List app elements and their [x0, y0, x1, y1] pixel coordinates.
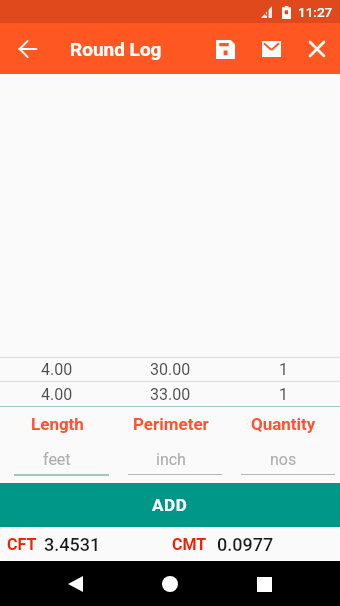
- button[interactable]: 4.00: [0, 358, 114, 381]
- staticText: 33.00: [150, 385, 191, 404]
- button[interactable]: 1: [227, 382, 340, 406]
- button[interactable]: Save: [202, 26, 248, 72]
- button[interactable]: CFT: [7, 527, 170, 561]
- staticText: 30.00: [150, 360, 191, 379]
- button[interactable]: 1: [227, 358, 340, 381]
- staticText: CFT: [7, 535, 37, 554]
- button[interactable]: Home: [150, 564, 190, 604]
- staticText: Round Log: [70, 38, 162, 60]
- button[interactable]: nos: [227, 450, 340, 475]
- staticText: 3.4531: [44, 534, 101, 555]
- button[interactable]: Back: [55, 564, 95, 604]
- staticText: feet: [43, 450, 71, 469]
- staticText: ADD: [152, 495, 188, 515]
- button[interactable]: CMT: [172, 527, 340, 561]
- staticText: nos: [270, 450, 297, 469]
- button[interactable]: 30.00: [114, 358, 227, 381]
- button[interactable]: 33.00: [114, 382, 227, 406]
- staticText: 1: [279, 385, 288, 404]
- staticText: 0.0977: [217, 534, 274, 555]
- button[interactable]: Email: [248, 26, 294, 72]
- staticText: 4.00: [41, 360, 73, 379]
- button[interactable]: Close: [294, 26, 340, 72]
- button[interactable]: ADD: [0, 483, 340, 527]
- button[interactable]: 4.00: [0, 382, 114, 406]
- staticText: Perimeter: [133, 414, 209, 434]
- staticText: 11:27: [298, 4, 333, 20]
- staticText: 1: [279, 360, 288, 379]
- button[interactable]: feet: [0, 450, 114, 476]
- staticText: Quantity: [251, 414, 316, 434]
- staticText: CMT: [172, 535, 207, 554]
- button[interactable]: inch: [114, 450, 227, 475]
- button[interactable]: Back: [0, 23, 54, 74]
- staticText: inch: [156, 450, 186, 469]
- button[interactable]: Recent apps: [244, 564, 284, 604]
- staticText: Length: [31, 414, 84, 434]
- staticText: 4.00: [41, 385, 73, 404]
